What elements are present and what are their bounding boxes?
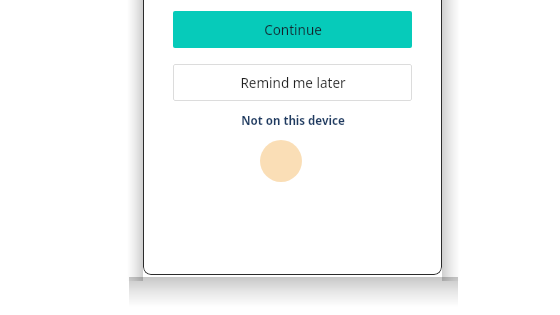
button[interactable]: Continue xyxy=(173,11,412,48)
staticText: Continue xyxy=(264,21,322,39)
button[interactable]: Not on this device xyxy=(213,109,373,133)
staticText: Not on this device xyxy=(241,113,345,129)
button[interactable]: Remind me later xyxy=(173,64,412,101)
staticText: Remind me later xyxy=(240,74,346,92)
other: Touch indicator xyxy=(260,140,302,182)
